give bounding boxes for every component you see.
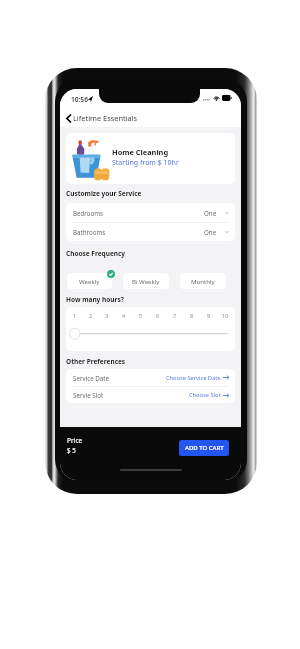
staticText: 9	[207, 312, 211, 320]
button[interactable]: Monthly	[180, 273, 226, 289]
staticText: Starting from $ 10hr	[112, 158, 179, 168]
staticText: 4	[122, 312, 126, 320]
staticText: Price	[67, 436, 83, 445]
staticText: 10:56	[71, 95, 88, 104]
staticText: Choose Frequency	[66, 249, 126, 258]
staticText: Bathrooms	[73, 228, 106, 236]
staticText: One	[204, 228, 217, 236]
staticText: 1	[73, 312, 77, 320]
staticText: 6	[156, 312, 160, 320]
button[interactable]: ADD TO CART	[179, 440, 229, 456]
button[interactable]: Service Date	[66, 369, 235, 386]
button[interactable]: Back	[64, 111, 140, 125]
other: Back	[66, 114, 71, 123]
staticText: 8	[190, 312, 194, 320]
button[interactable]: Bathrooms	[66, 223, 235, 241]
staticText: 7	[173, 312, 177, 320]
button[interactable]: Home Cleaning	[66, 133, 235, 184]
button[interactable]: Bi Weekly	[123, 273, 169, 289]
staticText: Bedrooms	[73, 209, 103, 217]
staticText: ADD TO CART	[185, 444, 224, 452]
staticText: Choose Slot	[189, 391, 221, 399]
staticText: 5	[139, 312, 143, 320]
button[interactable]: Servie Slot	[66, 387, 235, 403]
staticText: Other Preferences	[66, 357, 126, 366]
staticText: Weekly	[79, 277, 100, 285]
button[interactable]: Bedrooms	[66, 203, 235, 222]
staticText: Service Date	[73, 374, 109, 382]
staticText: How many hours?	[66, 295, 124, 304]
staticText: Bi Weekly	[132, 277, 160, 285]
staticText: Customize your Service	[66, 189, 142, 198]
staticText: Home Cleaning	[112, 147, 169, 157]
staticText: Choose Service Date	[166, 374, 221, 382]
staticText: 3	[105, 312, 109, 320]
staticText: 10	[222, 312, 229, 320]
staticText: Servie Slot	[73, 391, 104, 399]
staticText: Lifetime Essentials	[73, 113, 138, 123]
button[interactable]: Weekly	[67, 273, 112, 289]
staticText: Monthly	[191, 277, 215, 285]
staticText: 2	[89, 312, 93, 320]
staticText: $ 5	[67, 446, 76, 454]
staticText: One	[204, 209, 217, 217]
